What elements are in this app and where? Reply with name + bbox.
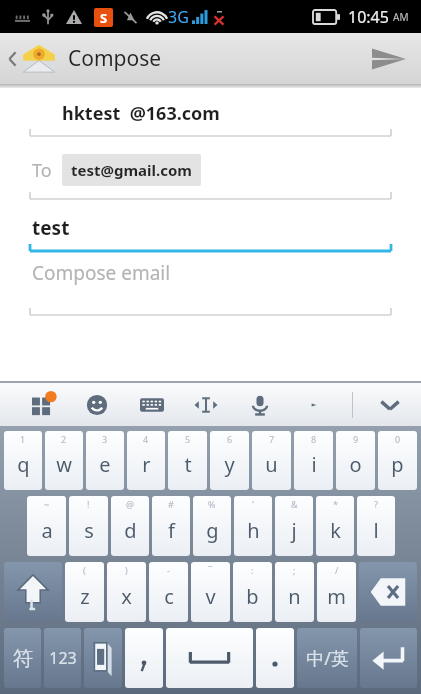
button[interactable]: ?	[357, 496, 395, 556]
button[interactable]: Backspace	[359, 562, 417, 622]
staticText: c	[164, 583, 174, 610]
button[interactable]: -	[149, 562, 188, 622]
staticText: k	[330, 517, 341, 544]
staticText: 符	[13, 646, 33, 671]
staticText: 123	[49, 647, 77, 669]
staticText: f	[168, 517, 175, 544]
staticText: Compose email	[32, 260, 171, 286]
button[interactable]: Compose	[7, 44, 162, 73]
button[interactable]: Keyboard layout	[135, 384, 169, 426]
button[interactable]: 3	[86, 431, 124, 490]
button[interactable]: 8	[294, 431, 333, 490]
staticText: /	[335, 564, 339, 576]
button[interactable]: @	[111, 496, 149, 556]
staticText: test	[32, 215, 70, 241]
button[interactable]: Period	[256, 628, 294, 688]
button[interactable]: 1	[4, 431, 42, 490]
button[interactable]: Move cursor	[189, 384, 223, 426]
staticText: 中/英	[306, 646, 349, 671]
staticText: h	[247, 517, 260, 544]
button[interactable]: ~	[27, 496, 66, 556]
button[interactable]: #	[152, 496, 190, 556]
staticText: ;	[293, 564, 296, 576]
staticText: b	[246, 583, 259, 610]
staticText: 3G	[168, 6, 189, 28]
button[interactable]: 4	[127, 431, 165, 490]
staticText: 6	[227, 433, 233, 445]
button[interactable]: 2	[45, 431, 83, 490]
staticText: v	[205, 583, 216, 610]
button[interactable]: 123	[44, 628, 81, 688]
staticText: y	[224, 451, 235, 478]
staticText: m	[327, 583, 346, 610]
button[interactable]: Hide keyboard	[373, 384, 407, 426]
button[interactable]: 符	[4, 628, 41, 688]
button[interactable]: ;	[275, 562, 314, 622]
button[interactable]: ¯	[191, 562, 230, 622]
staticText: q	[17, 451, 30, 478]
button[interactable]: )	[107, 562, 146, 622]
button[interactable]: Comma	[125, 628, 163, 688]
staticText: 9	[353, 433, 359, 445]
button[interactable]: 5	[168, 431, 207, 490]
staticText: *	[333, 498, 338, 510]
staticText: (	[83, 564, 86, 576]
button[interactable]: To	[0, 138, 421, 201]
button[interactable]: 6	[210, 431, 249, 490]
staticText: e	[99, 451, 111, 478]
staticText: s	[84, 517, 94, 544]
staticText: r	[142, 451, 151, 478]
button[interactable]: 中/英	[297, 628, 357, 688]
staticText: x	[121, 583, 132, 610]
button[interactable]: 7	[252, 431, 291, 490]
button[interactable]: 0	[378, 431, 417, 490]
button[interactable]: Send	[357, 33, 421, 84]
staticText: i	[311, 451, 317, 478]
staticText: 8	[311, 433, 317, 445]
button[interactable]: !	[69, 496, 108, 556]
staticText: 3	[102, 433, 108, 445]
button[interactable]: %	[193, 496, 231, 556]
staticText: 0	[395, 433, 401, 445]
button[interactable]: 9	[336, 431, 375, 490]
staticText: 1	[20, 433, 26, 445]
staticText: o	[349, 451, 362, 478]
button[interactable]: '	[234, 496, 272, 556]
staticText: #	[168, 498, 174, 510]
staticText: d	[124, 517, 137, 544]
staticText: j	[291, 517, 297, 544]
button[interactable]: Shift	[4, 562, 62, 622]
button[interactable]: Voice input	[243, 384, 277, 426]
staticText: n	[288, 583, 301, 610]
staticText: 5	[185, 433, 191, 445]
staticText: %	[208, 498, 216, 510]
staticText: t	[184, 451, 192, 478]
staticText: w	[56, 451, 72, 478]
staticText: z	[80, 583, 90, 610]
button[interactable]: test	[0, 201, 421, 254]
staticText: g	[206, 517, 219, 544]
button[interactable]: (	[65, 562, 104, 622]
button[interactable]: hktest @163.com	[0, 88, 421, 138]
button[interactable]: Compose email	[0, 254, 421, 317]
button[interactable]: :	[233, 562, 272, 622]
button[interactable]: Space	[166, 628, 253, 688]
button[interactable]: Dictionary	[84, 628, 122, 688]
staticText: @	[126, 498, 135, 510]
staticText: '	[252, 498, 255, 510]
button[interactable]: Panels	[26, 384, 60, 426]
staticText: l	[373, 517, 379, 544]
staticText: -	[167, 564, 170, 576]
button[interactable]: Enter	[360, 628, 417, 688]
staticText: ~	[44, 498, 50, 510]
staticText: 10:45	[348, 6, 389, 28]
button[interactable]: &	[275, 496, 313, 556]
staticText: a	[41, 517, 53, 544]
button[interactable]: More	[297, 384, 331, 426]
staticText: S	[100, 9, 108, 27]
staticText: 4	[143, 433, 149, 445]
button[interactable]: Emoji	[80, 384, 114, 426]
button[interactable]: /	[317, 562, 356, 622]
staticText: :	[251, 564, 254, 576]
button[interactable]: *	[316, 496, 354, 556]
